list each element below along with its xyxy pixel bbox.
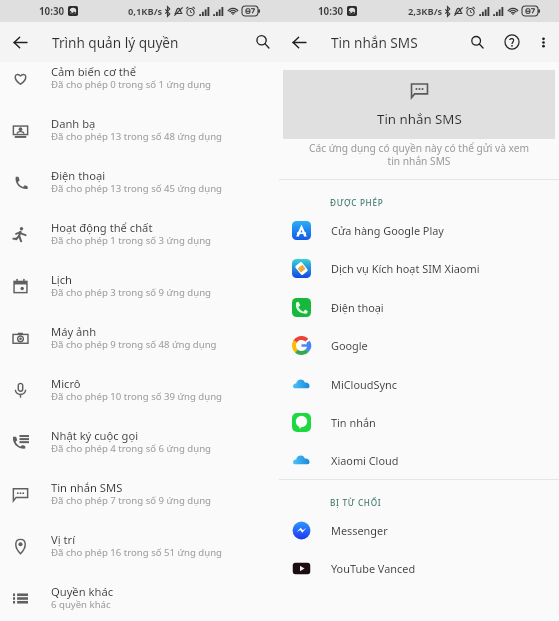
staticText: Đã cho phép 16 trong số 51 ứng dụng: [51, 546, 222, 559]
button[interactable]: Google: [279, 326, 559, 364]
button[interactable]: Tin nhắn SMS: [0, 468, 279, 520]
button[interactable]: Micrô: [0, 364, 279, 416]
staticText: Xiaomi Cloud: [331, 453, 399, 468]
staticText: Tin nhắn SMS: [51, 480, 123, 495]
button[interactable]: Search: [247, 22, 279, 62]
staticText: Quyền khác: [51, 584, 114, 599]
button[interactable]: More options: [528, 22, 559, 62]
button[interactable]: Cảm biến cơ thể: [0, 52, 279, 104]
staticText: BỊ TỪ CHỐI: [330, 497, 382, 508]
staticText: Nhật ký cuộc gọi: [51, 428, 139, 443]
button[interactable]: Cửa hàng Google Play: [279, 211, 559, 249]
staticText: 10:30: [39, 5, 65, 18]
staticText: 0,1KB/s: [128, 5, 163, 18]
button[interactable]: Search: [459, 22, 495, 62]
button[interactable]: Lịch: [0, 260, 279, 312]
staticText: Lịch: [51, 272, 73, 287]
staticText: Messenger: [331, 523, 388, 538]
button[interactable]: Điện thoại: [0, 156, 279, 208]
staticText: Đã cho phép 7 trong số 9 ứng dụng: [51, 494, 212, 507]
staticText: Đã cho phép 4 trong số 6 ứng dụng: [51, 442, 212, 455]
button[interactable]: Back: [279, 22, 320, 62]
button[interactable]: YouTube Vanced: [279, 549, 559, 587]
staticText: Đã cho phép 13 trong số 45 ứng dụng: [51, 182, 222, 195]
button[interactable]: MiCloudSync: [279, 365, 559, 403]
staticText: Trình quản lý quyền: [52, 33, 179, 52]
staticText: Cảm biến cơ thể: [51, 64, 137, 79]
staticText: YouTube Vanced: [331, 561, 416, 576]
staticText: 2,3KB/s: [408, 5, 443, 18]
staticText: Tin nhắn SMS: [377, 110, 462, 128]
staticText: Tin nhắn: [331, 415, 376, 430]
staticText: Đã cho phép 3 trong số 9 ứng dụng: [51, 286, 212, 299]
staticText: Đã cho phép 10 trong số 39 ứng dụng: [51, 390, 222, 403]
staticText: Micrô: [51, 376, 81, 391]
button[interactable]: Back: [0, 22, 41, 62]
button[interactable]: Điện thoại: [279, 288, 559, 326]
staticText: Hoạt động thể chất: [51, 220, 153, 235]
staticText: Điện thoại: [331, 300, 384, 315]
button[interactable]: Tin nhắn: [279, 403, 559, 441]
staticText: Cửa hàng Google Play: [331, 223, 444, 238]
staticText: MiCloudSync: [331, 377, 397, 392]
staticText: Máy ảnh: [51, 324, 97, 339]
button[interactable]: Danh bạ: [0, 104, 279, 156]
staticText: Tin nhắn SMS: [331, 33, 418, 52]
staticText: Các ứng dụng có quyền này có thể gửi và …: [279, 141, 559, 168]
button[interactable]: Xiaomi Cloud: [279, 441, 559, 479]
staticText: 6 quyền khác: [51, 598, 111, 611]
button[interactable]: Messenger: [279, 511, 559, 549]
button[interactable]: Hoạt động thể chất: [0, 208, 279, 260]
staticText: Đã cho phép 1 trong số 3 ứng dụng: [51, 234, 212, 247]
button[interactable]: Help: [495, 22, 528, 62]
button[interactable]: Quyền khác: [0, 572, 279, 621]
staticText: Vị trí: [51, 532, 76, 547]
button[interactable]: Nhật ký cuộc gọi: [0, 416, 279, 468]
button[interactable]: Máy ảnh: [0, 312, 279, 364]
staticText: Điện thoại: [51, 168, 106, 183]
staticText: Đã cho phép 0 trong số 1 ứng dụng: [51, 78, 212, 91]
staticText: Đã cho phép 13 trong số 48 ứng dụng: [51, 130, 222, 143]
staticText: Google: [331, 338, 368, 353]
button[interactable]: Dịch vụ Kích hoạt SIM Xiaomi: [279, 249, 559, 287]
staticText: ĐƯỢC PHÉP: [330, 197, 384, 208]
staticText: Danh bạ: [51, 116, 96, 131]
staticText: Dịch vụ Kích hoạt SIM Xiaomi: [331, 261, 480, 276]
staticText: Đã cho phép 9 trong số 48 ứng dụng: [51, 338, 217, 351]
button[interactable]: Vị trí: [0, 520, 279, 572]
staticText: 10:30: [318, 5, 344, 18]
